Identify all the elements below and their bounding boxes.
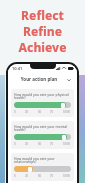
staticText: 0 [14, 110, 16, 114]
button[interactable]: How would you rate your relationships? [11, 153, 74, 181]
staticText: Refine [0, 23, 85, 39]
staticText: How would you rate your physical health? [14, 92, 71, 100]
staticText: 25 [25, 142, 29, 146]
button[interactable]: How would you rate your physical health? [11, 89, 74, 117]
staticText: 50 [38, 174, 42, 178]
staticText: 0 [14, 142, 16, 146]
staticText: 100% [63, 174, 71, 178]
staticText: 75 [50, 174, 54, 178]
button[interactable]: How would you rate your mental health? [11, 121, 74, 149]
staticText: 50 [38, 142, 42, 146]
staticText: 75 [50, 110, 54, 114]
staticText: Achieve [0, 39, 85, 55]
button[interactable]: Expand plan [65, 76, 72, 83]
staticText: Your action plan [13, 76, 65, 82]
button[interactable]: Your action plan [8, 73, 77, 85]
staticText: 50 [38, 110, 42, 114]
staticText: 25 [25, 174, 29, 178]
staticText: Reflect [0, 7, 85, 23]
staticText: 25 [25, 110, 29, 114]
staticText: 100% [63, 110, 71, 114]
staticText: 75 [50, 142, 54, 146]
staticText: How would you rate your mental health? [14, 124, 71, 132]
staticText: How would you rate your relationships? [14, 156, 71, 164]
staticText: 0 [14, 174, 16, 178]
staticText: 10:41 [12, 66, 23, 71]
staticText: 100% [63, 142, 71, 146]
